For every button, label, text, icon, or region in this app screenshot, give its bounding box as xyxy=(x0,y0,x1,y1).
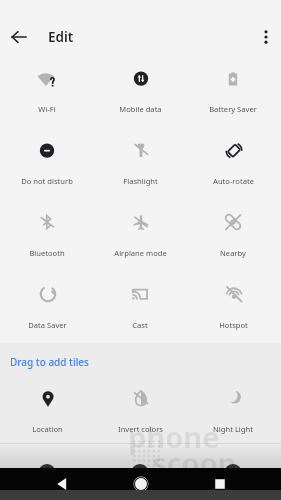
button[interactable]: Auto-rotate xyxy=(187,139,279,191)
staticText: Do not disturb xyxy=(21,176,73,186)
button[interactable]: Airplane mode xyxy=(94,211,186,263)
staticText: Night Light xyxy=(213,424,253,434)
button[interactable]: Back xyxy=(7,26,31,48)
staticText: Location xyxy=(32,424,63,434)
button[interactable]: Home xyxy=(133,476,149,492)
staticText: Drag to add tiles xyxy=(10,355,89,369)
button[interactable]: Back xyxy=(54,476,70,492)
staticText: Airplane mode xyxy=(114,248,167,258)
button[interactable]: Invert colors xyxy=(94,387,186,439)
staticText: Auto-rotate xyxy=(213,176,254,186)
staticText: Nearby xyxy=(220,248,246,258)
staticText: scoop xyxy=(152,443,237,482)
button[interactable]: Flashlight xyxy=(94,139,186,191)
staticText: Flashlight xyxy=(123,176,158,186)
staticText: Bluetooth xyxy=(29,248,65,258)
button[interactable]: Cast xyxy=(94,283,186,335)
button[interactable]: Hotspot xyxy=(187,283,279,335)
button[interactable]: Location xyxy=(1,387,93,439)
staticText: Edit xyxy=(48,28,74,46)
button[interactable]: Mobile data xyxy=(94,67,186,119)
button[interactable]: Recent apps xyxy=(212,476,228,492)
button[interactable]: Do not disturb xyxy=(1,139,93,191)
button[interactable]: Battery Saver xyxy=(187,67,279,119)
staticText: Mobile data xyxy=(119,104,162,114)
staticText: phone xyxy=(128,417,220,456)
button[interactable]: Wi-Fi xyxy=(1,67,93,119)
button[interactable]: Data Saver xyxy=(1,283,93,335)
button[interactable]: Bluetooth xyxy=(1,211,93,263)
button[interactable]: Night Light xyxy=(187,387,279,439)
button[interactable]: More options xyxy=(255,26,277,48)
staticText: Data Saver xyxy=(28,320,67,330)
staticText: Invert colors xyxy=(118,424,163,434)
staticText: Wi-Fi xyxy=(38,104,56,114)
staticText: Battery Saver xyxy=(209,104,257,114)
button[interactable]: Nearby xyxy=(187,211,279,263)
staticText: Hotspot xyxy=(219,320,248,330)
staticText: Cast xyxy=(132,320,148,330)
